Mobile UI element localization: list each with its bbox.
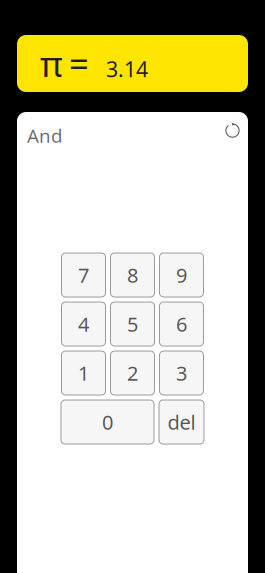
staticText: 5	[127, 311, 138, 337]
staticText: 6	[176, 311, 187, 337]
staticText: del	[167, 409, 195, 435]
staticText: 8	[127, 262, 138, 288]
staticText: 4	[78, 311, 89, 337]
button[interactable]: 7	[61, 253, 105, 297]
staticText: 2	[127, 360, 138, 386]
button[interactable]: 9	[159, 253, 203, 297]
staticText: =	[69, 40, 89, 86]
button[interactable]: 3	[159, 351, 203, 395]
button[interactable]: Reset	[225, 118, 241, 139]
button[interactable]: 6	[159, 302, 203, 346]
staticText: And	[27, 123, 62, 148]
button[interactable]: 4	[61, 302, 105, 346]
button[interactable]: 2	[110, 351, 154, 395]
staticText: 1	[78, 360, 89, 386]
button[interactable]: 5	[110, 302, 154, 346]
staticText: π	[40, 40, 63, 86]
button[interactable]: 0	[61, 400, 154, 444]
staticText: 3.14	[106, 55, 148, 83]
button[interactable]: del	[159, 400, 204, 444]
staticText: 3	[176, 360, 187, 386]
staticText: 0	[102, 409, 113, 435]
staticText: 7	[78, 262, 89, 288]
staticText: 9	[176, 262, 187, 288]
button[interactable]: 8	[110, 253, 154, 297]
button[interactable]: 1	[61, 351, 105, 395]
